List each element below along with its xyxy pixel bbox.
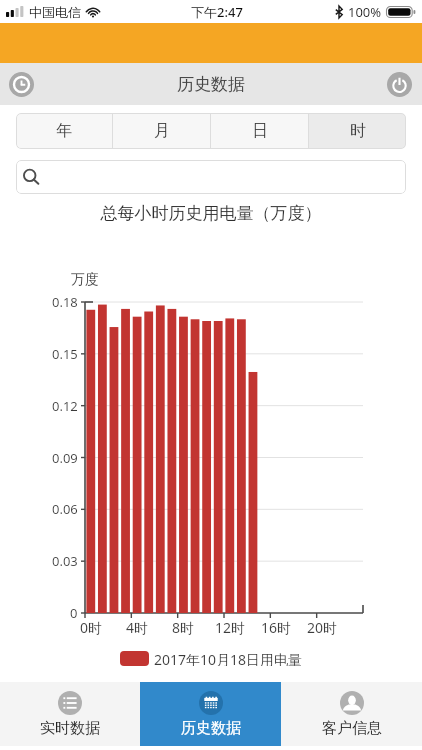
button[interactable]: Power	[384, 69, 414, 99]
staticText: 0	[70, 604, 78, 622]
staticText: 0.15	[52, 345, 78, 363]
button[interactable]: 客户信息	[281, 682, 422, 746]
button[interactable]: History	[6, 69, 36, 99]
button[interactable]: 年	[16, 113, 112, 149]
staticText: 8时	[172, 618, 195, 636]
staticText: 4时	[126, 618, 149, 636]
button[interactable]: 月	[113, 113, 210, 149]
staticText: 0.03	[52, 552, 78, 570]
staticText: 0.12	[52, 397, 78, 415]
staticText: 100%	[348, 3, 382, 21]
staticText: 日	[252, 121, 268, 141]
staticText: 历史数据	[177, 74, 245, 95]
staticText: 0.06	[52, 500, 78, 518]
staticText: 0.09	[52, 449, 78, 467]
staticText: 月	[154, 121, 170, 141]
button[interactable]	[16, 160, 406, 194]
staticText: 16时	[261, 618, 292, 636]
staticText: 20时	[307, 618, 338, 636]
staticText: 历史数据	[181, 719, 241, 738]
staticText: 年	[56, 121, 72, 141]
staticText: 12时	[215, 618, 246, 636]
staticText: 万度	[71, 271, 99, 289]
staticText: 中国电信	[29, 4, 81, 20]
button[interactable]: 历史数据	[140, 682, 281, 746]
staticText: 0.18	[52, 293, 78, 311]
button[interactable]: 时	[309, 113, 406, 149]
button[interactable]: 日	[211, 113, 308, 149]
staticText: 2017年10月18日用电量	[154, 650, 303, 666]
button[interactable]: 实时数据	[0, 682, 140, 746]
staticText: 实时数据	[40, 719, 100, 738]
staticText: 客户信息	[322, 719, 382, 738]
staticText: 0时	[80, 618, 103, 636]
staticText: 总每小时历史用电量（万度）	[0, 203, 422, 224]
staticText: 下午2:47	[191, 3, 243, 21]
staticText: 时	[350, 121, 366, 141]
